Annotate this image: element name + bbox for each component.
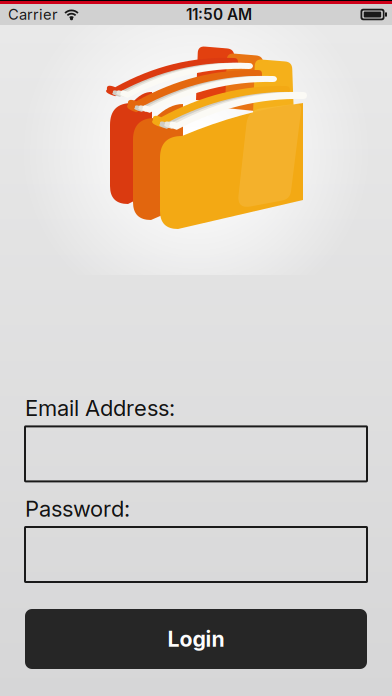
staticText: Login (167, 626, 224, 652)
staticText: Email Address: (25, 395, 175, 421)
staticText: 11:50 AM (186, 5, 252, 24)
button[interactable]: Email Address (25, 426, 367, 481)
button[interactable]: Password (25, 527, 367, 582)
button[interactable]: Login (25, 609, 367, 669)
staticText: Carrier (8, 6, 58, 23)
staticText: Password: (25, 495, 130, 522)
